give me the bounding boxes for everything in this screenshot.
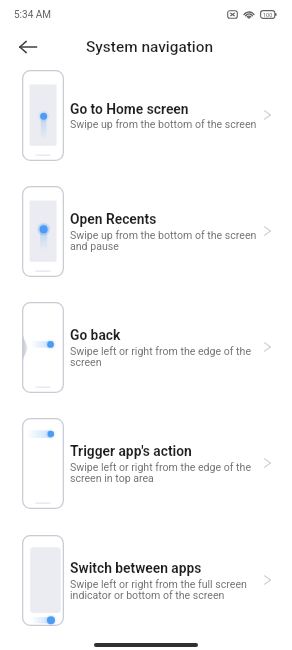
- staticText: Swipe left or right from the edge of the…: [70, 461, 258, 485]
- button[interactable]: Trigger app's action: [0, 405, 292, 521]
- staticText: Swipe left or right from the full screen…: [70, 578, 258, 602]
- button[interactable]: Go to Home screen: [0, 57, 292, 173]
- staticText: Go to Home screen: [70, 101, 189, 117]
- button[interactable]: Back: [11, 35, 45, 59]
- staticText: 100: [263, 12, 273, 18]
- staticText: Trigger app's action: [70, 443, 192, 459]
- staticText: Swipe up from the bottom of the screen a…: [70, 229, 258, 253]
- button[interactable]: Go back: [0, 289, 292, 405]
- staticText: Open Recents: [70, 211, 157, 227]
- staticText: Swipe up from the bottom of the screen: [70, 118, 258, 130]
- staticText: System navigation: [86, 38, 214, 56]
- button[interactable]: Switch between apps: [0, 522, 292, 638]
- button[interactable]: Open Recents: [0, 173, 292, 289]
- staticText: Switch between apps: [70, 560, 202, 576]
- staticText: Go back: [70, 327, 121, 343]
- staticText: 5:34 AM: [14, 9, 52, 21]
- staticText: Swipe left or right from the edge of the…: [70, 345, 258, 369]
